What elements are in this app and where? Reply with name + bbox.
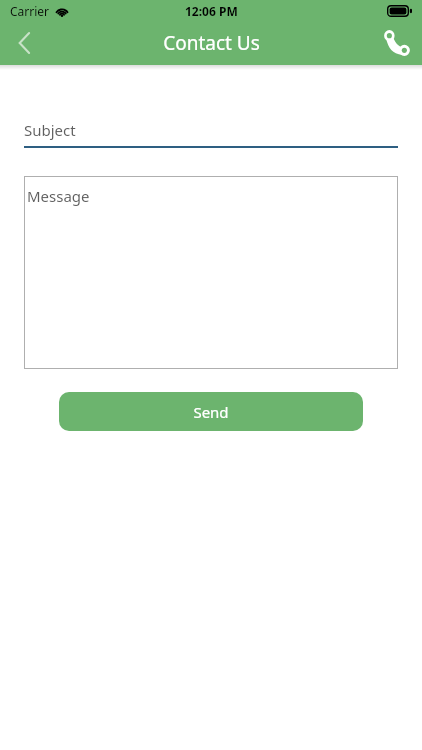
button[interactable]: Send bbox=[59, 392, 363, 431]
button[interactable]: Message bbox=[24, 176, 398, 369]
staticText: Message bbox=[27, 186, 90, 206]
button[interactable]: Call bbox=[370, 21, 422, 65]
staticText: Carrier bbox=[10, 3, 50, 19]
staticText: 12:06 PM bbox=[185, 3, 238, 19]
button[interactable]: Subject bbox=[24, 120, 398, 148]
staticText: Subject bbox=[24, 120, 76, 140]
staticText: Contact Us bbox=[163, 30, 260, 56]
staticText: Send bbox=[193, 402, 229, 422]
button[interactable]: Back bbox=[0, 21, 48, 65]
